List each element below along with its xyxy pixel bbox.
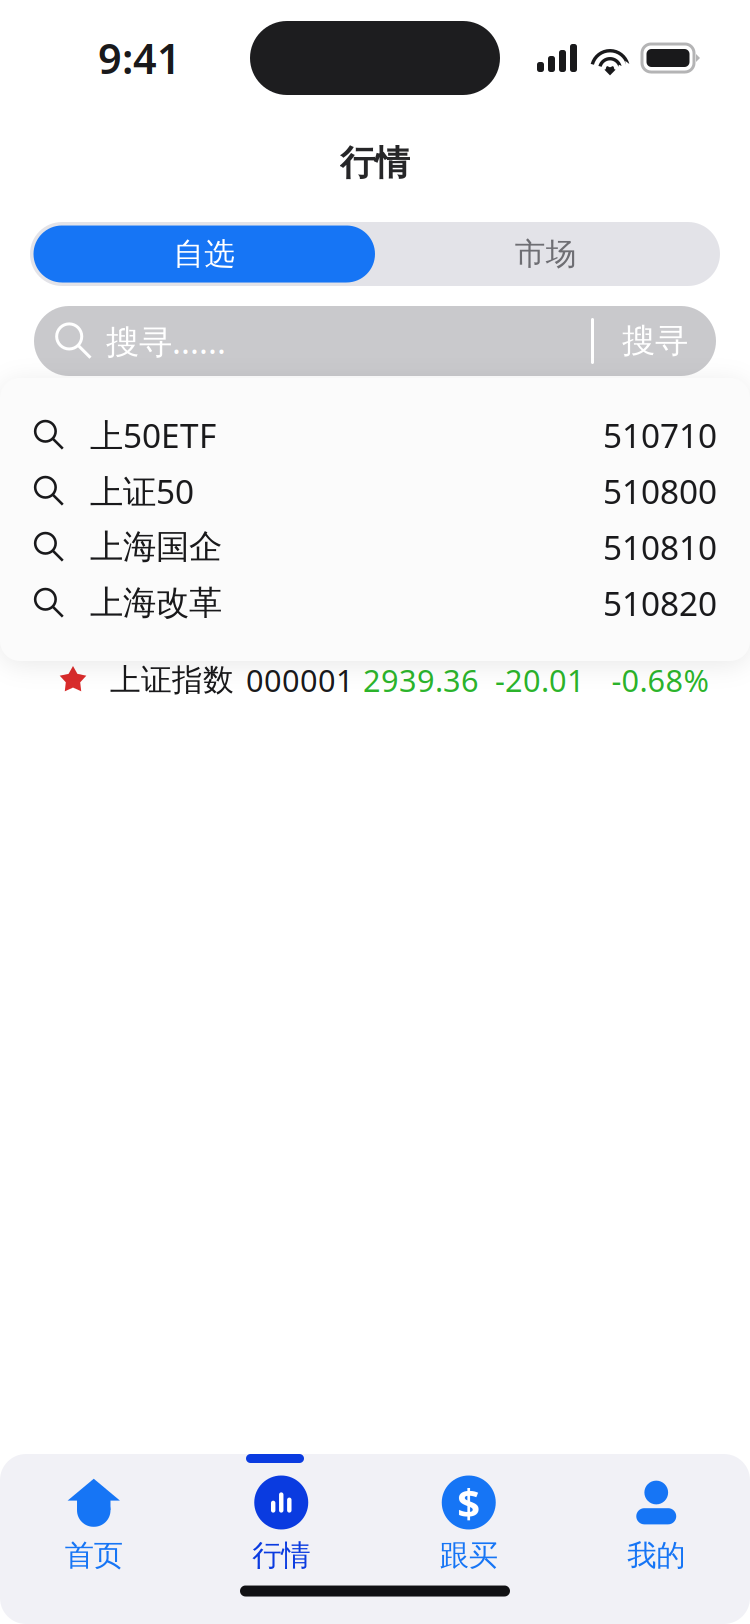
staticText: 跟买 (440, 1537, 498, 1573)
staticText: 510800 (603, 469, 717, 513)
staticText: 2939.36 (363, 660, 479, 700)
button[interactable]: 我的 (562, 1475, 750, 1585)
button[interactable]: 行情 (187, 1475, 375, 1585)
button[interactable]: 自选 (33, 225, 375, 282)
staticText: 510810 (603, 525, 717, 569)
staticText: 上海国企 (90, 526, 222, 567)
button[interactable]: 搜寻 (594, 306, 716, 376)
button[interactable]: 上证50 (0, 463, 750, 519)
button[interactable]: $ (375, 1475, 562, 1585)
button[interactable]: 市场 (375, 225, 716, 282)
staticText: 9:41 (98, 31, 181, 85)
staticText: -20.01 (495, 660, 585, 700)
staticText: 搜寻 (622, 320, 688, 361)
staticText: 首页 (65, 1537, 123, 1573)
button[interactable]: 上证指数 (0, 658, 750, 702)
staticText: 搜寻...... (106, 319, 226, 363)
staticText: -0.68% (611, 660, 708, 700)
staticText: 上证指数 (110, 661, 234, 699)
button[interactable]: 上50ETF (0, 407, 750, 463)
staticText: 我的 (627, 1537, 685, 1573)
button[interactable]: 上海国企 (0, 519, 750, 575)
button[interactable]: 上海改革 (0, 575, 750, 631)
button[interactable]: 首页 (0, 1475, 187, 1585)
staticText: 000001 (246, 660, 354, 700)
staticText: 行情 (340, 142, 410, 184)
staticText: 上证50 (90, 469, 194, 513)
staticText: 行情 (252, 1537, 310, 1573)
staticText: 上50ETF (90, 413, 216, 457)
staticText: 自选 (173, 235, 235, 273)
staticText: 510710 (603, 413, 717, 457)
staticText: $ (457, 1476, 480, 1529)
staticText: 上海改革 (90, 582, 222, 623)
staticText: 510820 (603, 581, 717, 625)
staticText: 市场 (515, 235, 577, 273)
